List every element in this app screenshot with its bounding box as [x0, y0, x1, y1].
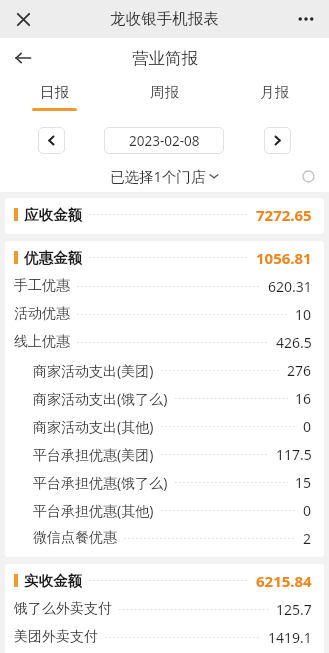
- staticText: 商家活动支出(其他): [33, 417, 154, 436]
- button[interactable]: 平台承担优惠(美团): [5, 440, 324, 468]
- staticText: 平台承担优惠(美团): [33, 445, 154, 464]
- staticText: 125.7: [276, 600, 312, 619]
- button[interactable]: 美团外卖支付: [5, 623, 324, 651]
- button[interactable]: 周报: [109, 78, 219, 116]
- staticText: 620.31: [268, 277, 312, 296]
- staticText: 饿了么外卖支付: [14, 600, 112, 618]
- button[interactable]: 商家活动支出(其他): [5, 412, 324, 440]
- staticText: 1419.1: [268, 628, 312, 647]
- staticText: 1056.81: [256, 248, 312, 268]
- button[interactable]: 已选择1个门店: [110, 166, 219, 186]
- button[interactable]: Previous day: [38, 127, 65, 154]
- staticText: 微信点餐优惠: [33, 529, 117, 547]
- button[interactable]: 饿了么外卖支付: [5, 595, 324, 623]
- staticText: 7272.65: [256, 205, 312, 225]
- staticText: 周报: [150, 83, 179, 101]
- staticText: 已选择1个门店: [110, 166, 206, 186]
- staticText: 平台承担优惠(饿了么): [33, 473, 168, 492]
- button[interactable]: Back: [7, 42, 39, 74]
- staticText: 117.5: [276, 445, 312, 464]
- button[interactable]: 商家活动支出(饿了么): [5, 384, 324, 412]
- button[interactable]: 微信点餐优惠: [5, 524, 324, 552]
- staticText: 426.5: [276, 333, 312, 352]
- staticText: 活动优惠: [14, 305, 70, 323]
- staticText: 0: [303, 501, 312, 520]
- staticText: 龙收银手机报表: [110, 9, 219, 29]
- button[interactable]: 商家活动支出(美团): [5, 356, 324, 384]
- staticText: 商家活动支出(饿了么): [33, 389, 168, 408]
- staticText: 0: [303, 417, 312, 436]
- staticText: 月报: [260, 83, 289, 101]
- staticText: 276: [287, 361, 312, 380]
- button[interactable]: 应收金额: [5, 200, 324, 229]
- button[interactable]: Next day: [264, 127, 291, 154]
- staticText: 实收金额: [24, 572, 82, 590]
- button[interactable]: 平台承担优惠(饿了么): [5, 468, 324, 496]
- staticText: 6215.84: [256, 571, 312, 591]
- staticText: 商家活动支出(美团): [33, 361, 154, 380]
- button[interactable]: 优惠金额: [5, 243, 324, 272]
- staticText: 16: [295, 389, 312, 408]
- staticText: 营业简报: [132, 48, 198, 69]
- staticText: 线上优惠: [14, 333, 70, 351]
- staticText: 手工优惠: [14, 277, 70, 295]
- button[interactable]: 线上优惠: [5, 328, 324, 356]
- button[interactable]: More options: [291, 4, 321, 34]
- staticText: 15: [295, 473, 312, 492]
- staticText: 日报: [40, 83, 69, 101]
- button[interactable]: Refresh: [295, 163, 321, 189]
- button[interactable]: 平台承担优惠(其他): [5, 496, 324, 524]
- staticText: 10: [295, 305, 312, 324]
- staticText: 2: [303, 529, 312, 548]
- button[interactable]: 2023-02-08: [104, 127, 224, 154]
- button[interactable]: 日报: [0, 78, 109, 116]
- button[interactable]: 月报: [219, 78, 329, 116]
- staticText: 应收金额: [24, 206, 82, 224]
- button[interactable]: 实收金额: [5, 566, 324, 595]
- staticText: 平台承担优惠(其他): [33, 501, 154, 520]
- button[interactable]: Close: [8, 4, 38, 34]
- button[interactable]: 活动优惠: [5, 300, 324, 328]
- staticText: 美团外卖支付: [14, 628, 98, 646]
- button[interactable]: 手工优惠: [5, 272, 324, 300]
- staticText: 优惠金额: [24, 249, 82, 267]
- staticText: 2023-02-08: [129, 132, 200, 150]
